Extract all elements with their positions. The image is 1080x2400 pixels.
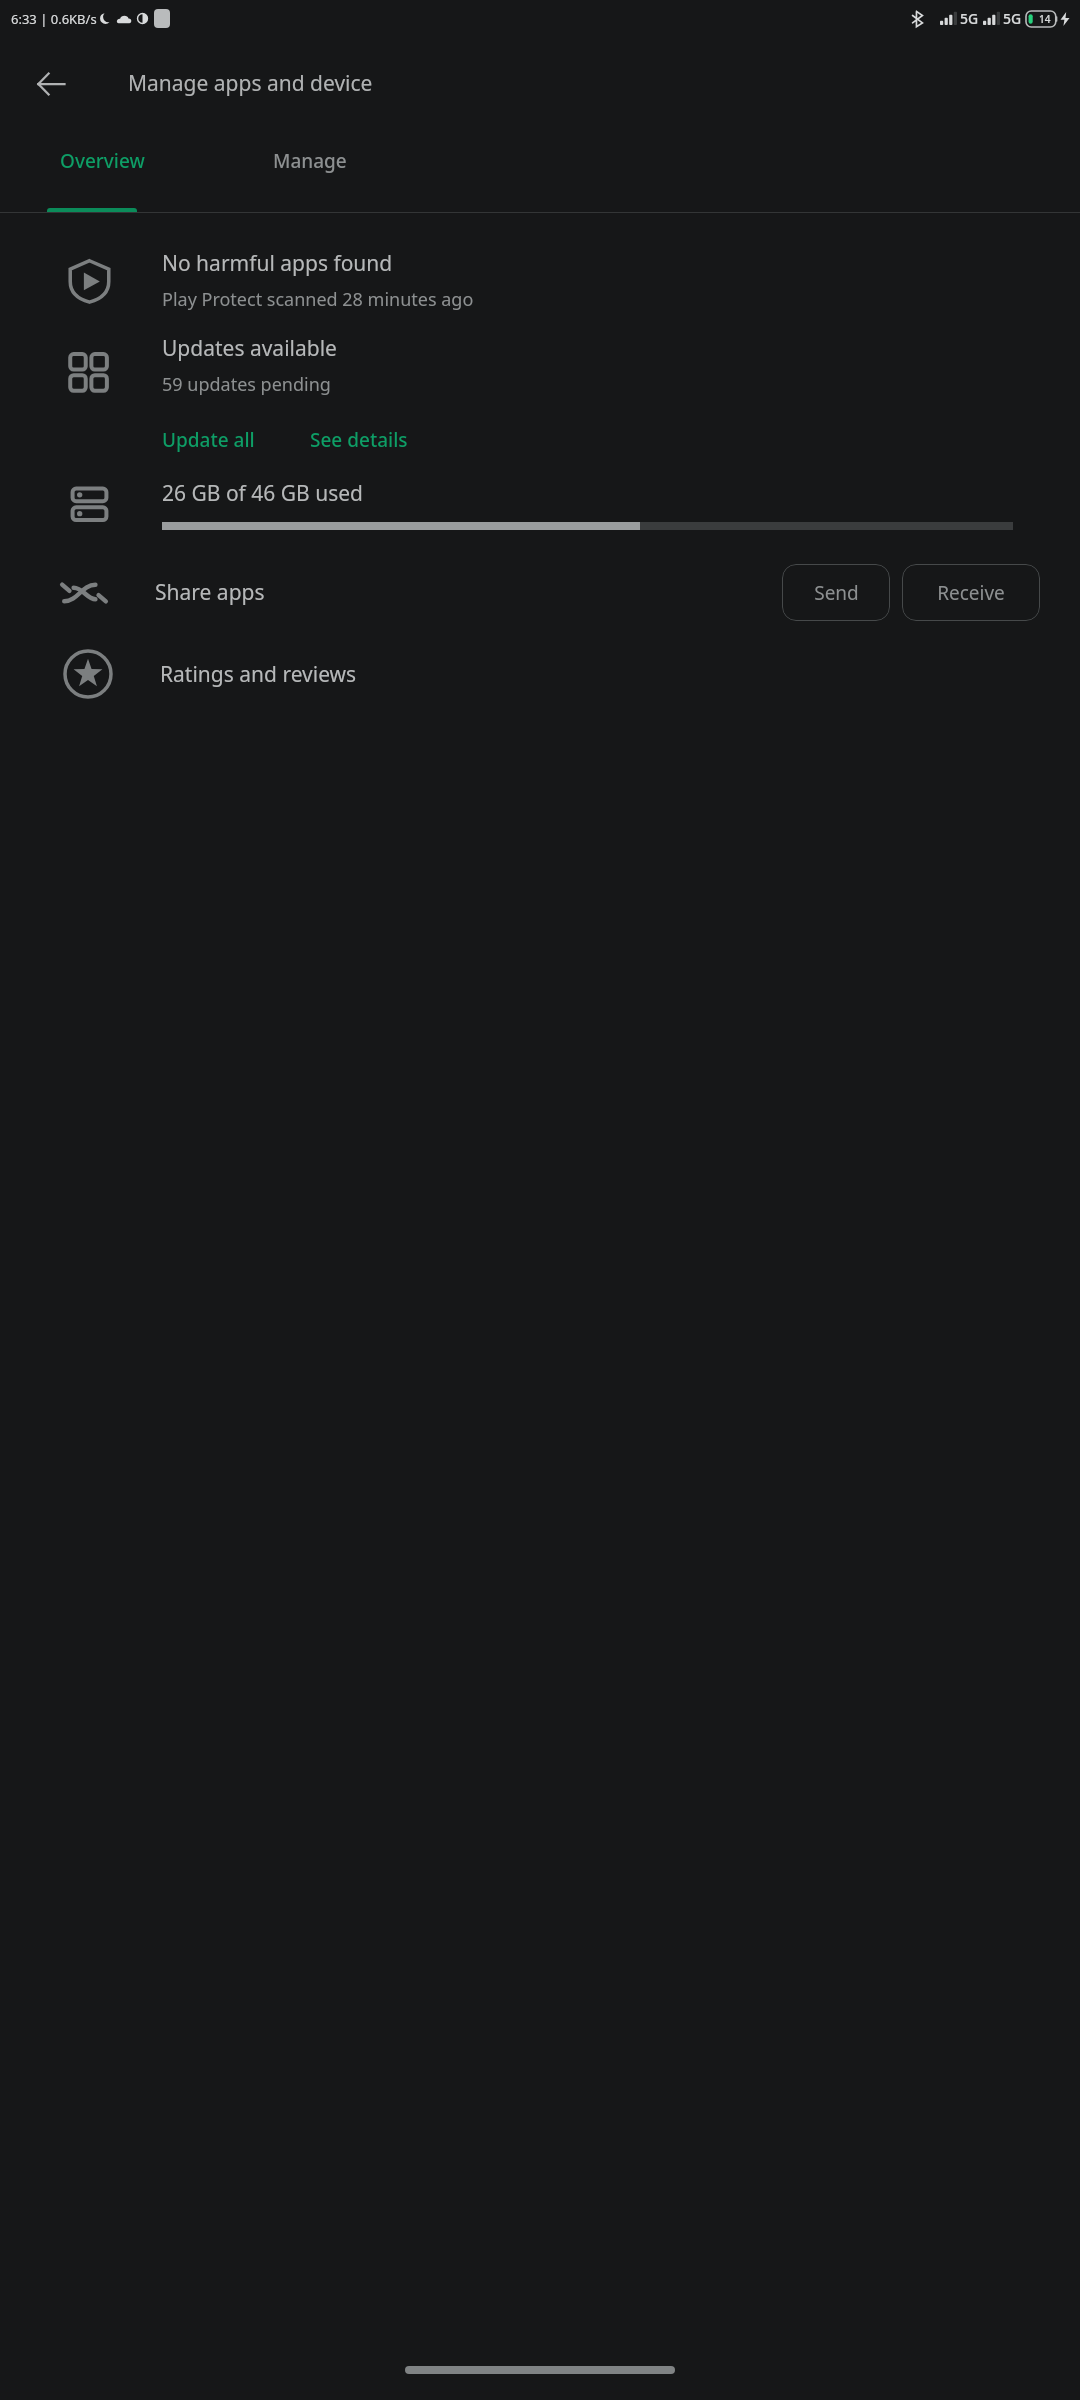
staticText: Send	[814, 580, 859, 606]
button[interactable]: Overview	[0, 130, 205, 213]
staticText: Ratings and reviews	[160, 660, 357, 689]
staticText: Manage	[273, 148, 347, 174]
staticText: Manage apps and device	[128, 69, 373, 98]
button[interactable]: Send	[782, 564, 890, 621]
staticText: Updates available	[162, 334, 337, 363]
button[interactable]: Update all	[162, 427, 255, 453]
staticText: 5G	[960, 9, 979, 28]
staticText: Play Protect scanned 28 minutes ago	[162, 287, 474, 312]
staticText: Update all	[162, 427, 255, 453]
staticText: Receive	[937, 580, 1005, 606]
button[interactable]: Manage	[205, 130, 415, 213]
staticText: Overview	[60, 148, 145, 174]
staticText: Share apps	[155, 578, 265, 607]
staticText: 14	[1039, 12, 1051, 26]
button[interactable]: Back	[22, 55, 80, 113]
staticText: 6:33 | 0.6KB/s	[11, 10, 97, 28]
staticText: No harmful apps found	[162, 249, 393, 278]
button[interactable]: See details	[310, 427, 408, 453]
staticText: 26 GB of 46 GB used	[162, 479, 363, 508]
staticText: See details	[310, 427, 408, 453]
button[interactable]: Ratings and reviews	[0, 649, 1080, 699]
button[interactable]: Receive	[902, 564, 1040, 621]
button[interactable]: No harmful apps found	[0, 249, 1080, 312]
button[interactable]: 26 GB of 46 GB used	[0, 479, 1080, 530]
staticText: 5G	[1003, 9, 1022, 28]
staticText: 59 updates pending	[162, 372, 331, 397]
